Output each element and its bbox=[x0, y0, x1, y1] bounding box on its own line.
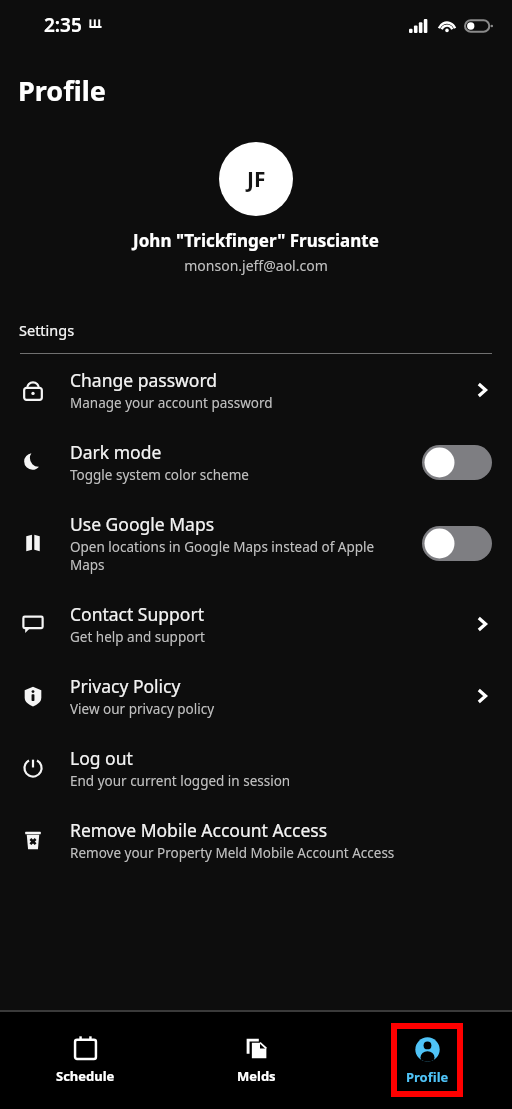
button[interactable]: Privacy Policy bbox=[0, 660, 512, 732]
staticText: Use Google Maps bbox=[70, 512, 215, 536]
button[interactable]: Log out bbox=[0, 732, 512, 804]
button[interactable]: Change password bbox=[0, 354, 512, 426]
button[interactable]: Use Google Maps bbox=[0, 498, 512, 588]
button[interactable]: Toggle bbox=[422, 526, 492, 561]
staticText: monson.jeff@aol.com bbox=[0, 256, 512, 275]
button[interactable]: Profile bbox=[397, 1029, 457, 1091]
staticText: Remove your Property Meld Mobile Account… bbox=[70, 844, 395, 862]
staticText: Change password bbox=[70, 368, 218, 392]
button[interactable]: Schedule bbox=[49, 1023, 121, 1097]
staticText: Toggle system color scheme bbox=[70, 466, 249, 484]
button[interactable]: Melds bbox=[220, 1023, 292, 1097]
staticText: Log out bbox=[70, 746, 133, 770]
staticText: John "Trickfinger" Frusciante bbox=[0, 229, 512, 252]
staticText: Profile bbox=[18, 72, 106, 109]
staticText: Open locations in Google Maps instead of… bbox=[70, 538, 410, 574]
staticText: Settings bbox=[19, 320, 75, 340]
staticText: Manage your account password bbox=[70, 394, 273, 412]
button[interactable]: Remove Mobile Account Access bbox=[0, 804, 512, 876]
staticText: View our privacy policy bbox=[70, 700, 215, 718]
staticText: End your current logged in session bbox=[70, 772, 291, 790]
staticText: JF bbox=[247, 165, 266, 194]
staticText: Dark mode bbox=[70, 440, 162, 464]
staticText: Schedule bbox=[56, 1067, 115, 1085]
staticText: Contact Support bbox=[70, 602, 204, 626]
staticText: Get help and support bbox=[70, 628, 205, 646]
staticText: 2:35 bbox=[44, 12, 82, 38]
staticText: Melds bbox=[237, 1067, 276, 1085]
staticText: Remove Mobile Account Access bbox=[70, 818, 328, 842]
button[interactable]: Toggle bbox=[422, 445, 492, 480]
button[interactable]: Dark mode bbox=[0, 426, 512, 498]
staticText: Privacy Policy bbox=[70, 674, 181, 698]
staticText: Profile bbox=[406, 1068, 449, 1086]
button[interactable]: Contact Support bbox=[0, 588, 512, 660]
